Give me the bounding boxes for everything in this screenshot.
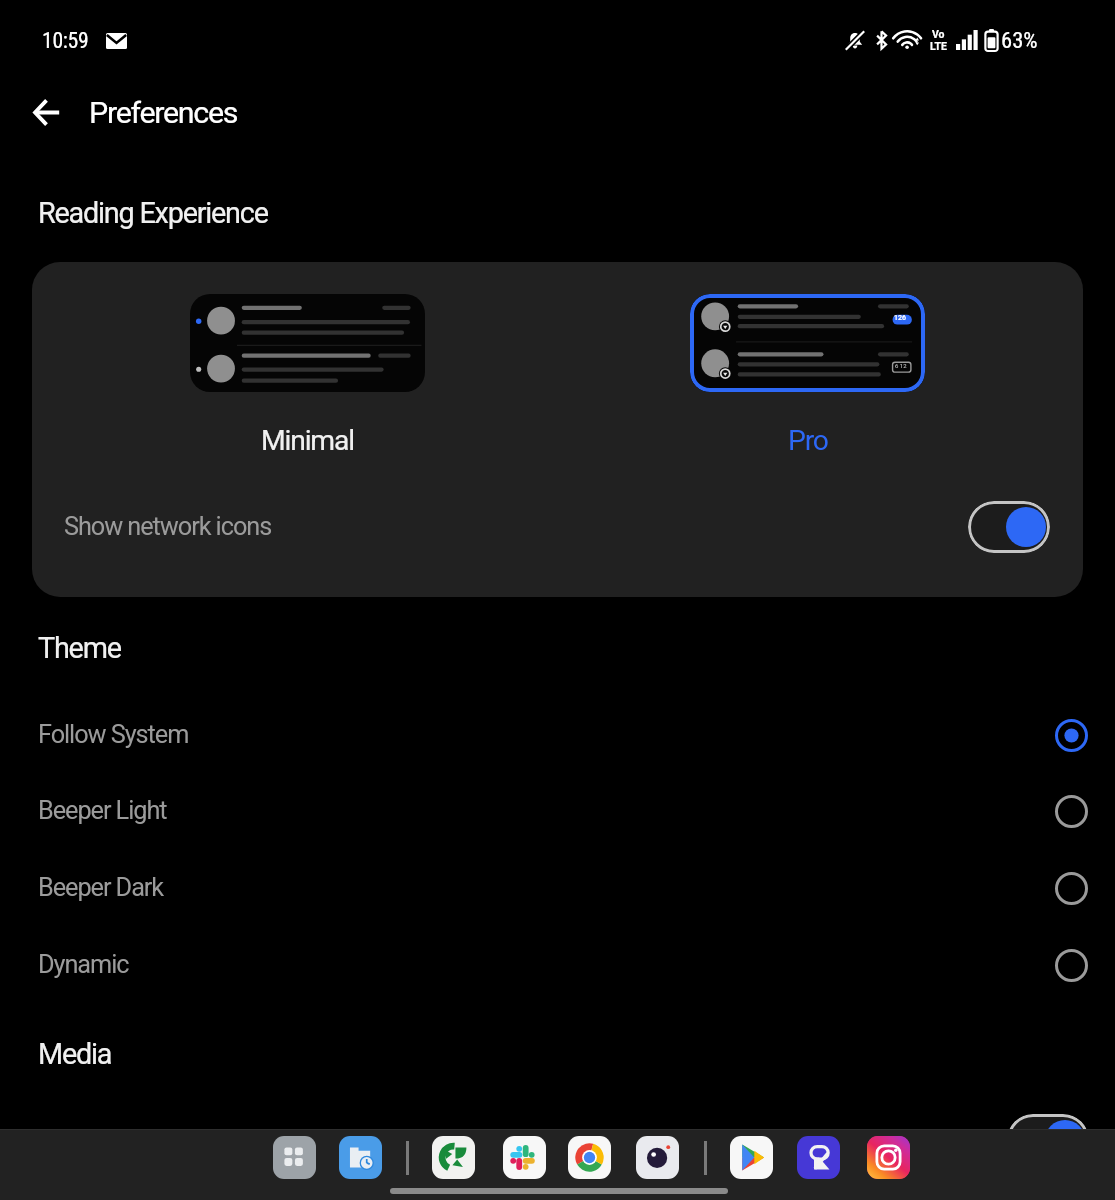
button[interactable]: Beeper Light	[0, 773, 1115, 849]
button[interactable]: Slack	[503, 1136, 546, 1179]
button[interactable]: Minimal	[190, 294, 425, 457]
button[interactable]: Show network icons	[32, 472, 1083, 582]
staticText: Beeper Dark	[38, 873, 164, 903]
staticText: 10:59	[42, 28, 89, 53]
staticText: Beeper Light	[38, 796, 167, 826]
staticText: Reading Experience	[38, 196, 268, 230]
button[interactable]: Apps	[273, 1136, 316, 1179]
button[interactable]: Dynamic	[0, 927, 1115, 1003]
button[interactable]: Instagram	[867, 1136, 910, 1179]
staticText: 126	[894, 314, 906, 322]
staticText: Vo	[932, 28, 945, 40]
button[interactable]: Follow System	[0, 697, 1115, 773]
button[interactable]: 126	[690, 294, 925, 457]
staticText: Follow System	[38, 720, 189, 750]
staticText: Theme	[38, 631, 121, 665]
button[interactable]: Back	[22, 88, 70, 136]
button[interactable]: Beeper	[797, 1136, 840, 1179]
staticText: 63%	[1001, 27, 1038, 53]
button[interactable]: Chrome	[568, 1136, 611, 1179]
staticText: Pro	[788, 424, 828, 457]
staticText: 6 12	[895, 362, 907, 369]
staticText: LTE	[930, 40, 947, 52]
button[interactable]: Phone	[432, 1136, 475, 1179]
staticText: Dynamic	[38, 950, 129, 980]
button[interactable]: Camera	[636, 1136, 679, 1179]
button[interactable]: Toggle	[1007, 1114, 1089, 1166]
button[interactable]: Toggle	[968, 501, 1050, 553]
staticText: Show network icons	[64, 512, 272, 542]
staticText: Media	[38, 1037, 112, 1071]
button[interactable]: Files	[339, 1136, 382, 1179]
staticText: Minimal	[261, 424, 354, 457]
button[interactable]: Beeper Dark	[0, 850, 1115, 926]
staticText: Preferences	[89, 95, 238, 131]
button[interactable]: Play Store	[730, 1136, 773, 1179]
